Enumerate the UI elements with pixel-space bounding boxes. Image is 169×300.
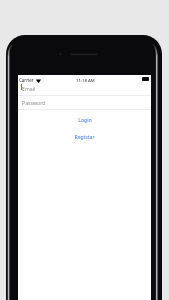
button[interactable]: Registar [18,132,151,140]
other: Battery [142,77,149,81]
staticText: Login [78,116,92,123]
button[interactable]: Email [18,82,151,96]
staticText: Password [22,99,46,106]
other: Wi-Fi [36,78,41,83]
staticText: Email [22,85,36,92]
staticText: Registar [74,133,95,140]
staticText: Carrier [19,77,34,83]
button[interactable]: Password [18,96,151,110]
button[interactable]: Login [18,115,151,123]
staticText: 11:18 AM [76,77,95,83]
